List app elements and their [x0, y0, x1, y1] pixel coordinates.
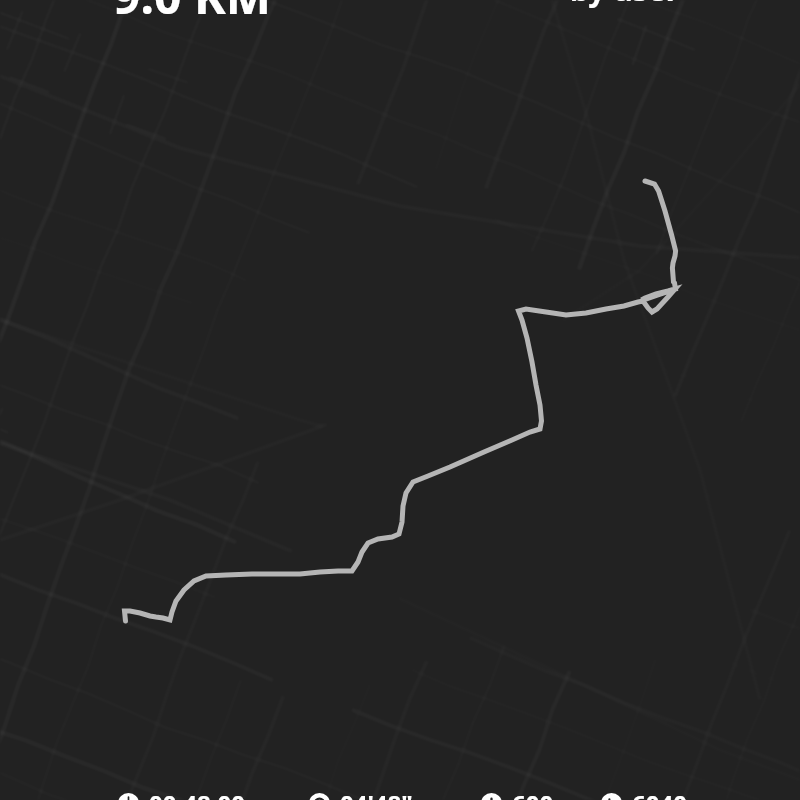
button[interactable]: Duration	[118, 787, 245, 800]
button[interactable]: Average pace	[309, 787, 413, 800]
button[interactable]: 9.0 KM	[113, 0, 272, 23]
staticText: 6040	[632, 787, 687, 800]
button[interactable]: Steps	[601, 787, 687, 800]
button[interactable]: by user	[570, 0, 680, 10]
staticText: 00:48:00	[149, 787, 245, 800]
staticText: 600	[512, 787, 554, 800]
staticText: 04'48"	[340, 787, 413, 800]
button[interactable]: Calories	[481, 787, 554, 800]
